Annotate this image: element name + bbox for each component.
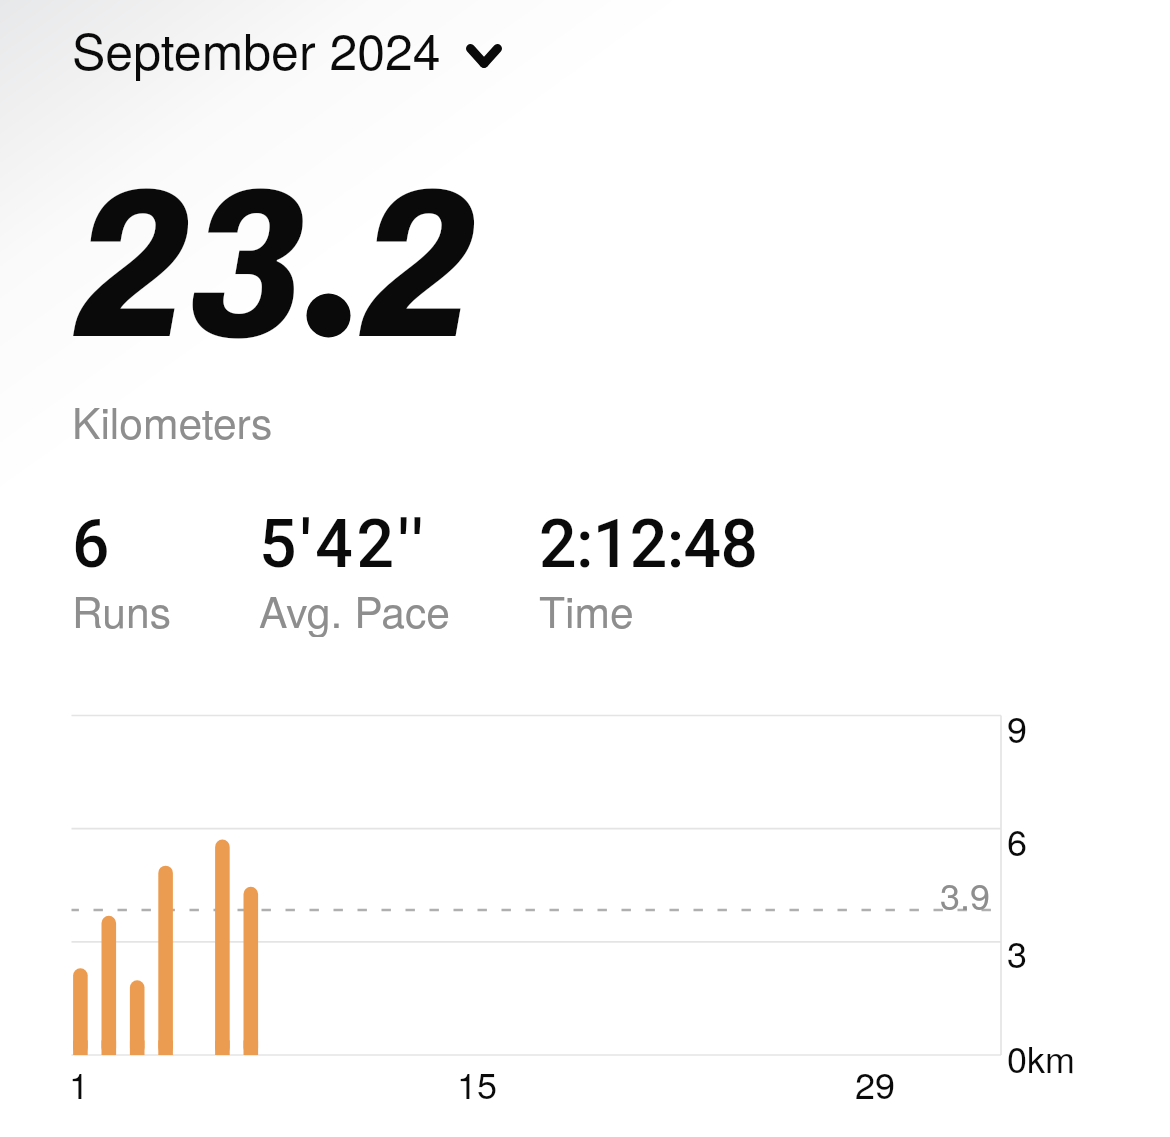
staticText: 29 <box>855 1058 896 1110</box>
button[interactable]: 5'42'' <box>259 506 519 641</box>
other: Choose month <box>466 34 502 78</box>
staticText: 6 <box>72 506 110 583</box>
staticText: Time <box>539 579 634 637</box>
staticText: 9 <box>1007 702 1028 754</box>
staticText: Runs <box>72 579 171 637</box>
staticText: September 2024 <box>72 13 441 85</box>
staticText: Kilometers <box>72 390 273 451</box>
staticText: 3.9 <box>940 869 991 921</box>
staticText: 1 <box>69 1058 90 1110</box>
staticText: 0km <box>1007 1032 1076 1084</box>
staticText: 3 <box>1007 927 1028 979</box>
button[interactable]: September 2024 <box>72 13 502 85</box>
staticText: 2:12:48 <box>539 506 758 583</box>
staticText: 6 <box>1007 815 1028 867</box>
button[interactable]: 2:12:48 <box>539 506 799 641</box>
staticText: 5'42'' <box>259 506 427 583</box>
staticText: 15 <box>457 1058 498 1110</box>
button[interactable]: 6 <box>72 506 332 641</box>
staticText: Avg. Pace <box>259 579 450 637</box>
